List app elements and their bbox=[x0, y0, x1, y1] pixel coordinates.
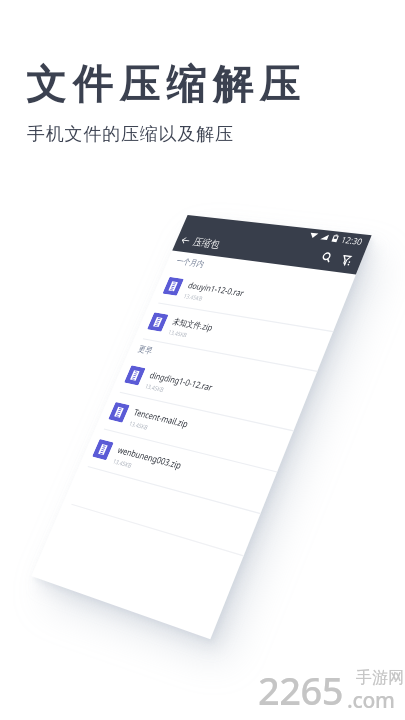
staticText: 一个月内 bbox=[175, 255, 206, 269]
button[interactable]: Search bbox=[313, 246, 341, 269]
staticText: 文件压缩解压 bbox=[26, 59, 307, 109]
staticText: .com bbox=[347, 686, 395, 715]
staticText: 压缩包 bbox=[191, 235, 222, 251]
staticText: 13.45KB bbox=[112, 457, 134, 469]
button[interactable]: douyin1-12-0.rar bbox=[150, 267, 349, 332]
staticText: 未知文件.zip bbox=[171, 315, 215, 333]
button[interactable]: dingding1-0-12.rar bbox=[111, 355, 309, 431]
button[interactable]: Filter bbox=[333, 248, 361, 272]
staticText: douyin1-12-0.rar bbox=[186, 279, 247, 298]
staticText: 手游网 bbox=[356, 668, 404, 688]
button[interactable]: Tencent-mail.zip bbox=[95, 391, 293, 473]
staticText: wenbuneng003.zip bbox=[116, 443, 184, 471]
staticText: 12:30 bbox=[339, 233, 365, 247]
staticText: Tencent-mail.zip bbox=[132, 406, 191, 430]
staticText: 13.45KB bbox=[144, 382, 166, 393]
staticText: 13.45KB bbox=[128, 419, 150, 431]
staticText: 更早 bbox=[137, 343, 154, 356]
staticText: 13.45KB bbox=[167, 328, 189, 338]
button[interactable]: wenbuneng003.zip bbox=[79, 428, 277, 514]
staticText: 手机文件的压缩以及解压 bbox=[27, 123, 234, 146]
staticText: dingding1-0-12.rar bbox=[148, 369, 215, 393]
staticText: 2265 bbox=[258, 664, 343, 716]
button[interactable]: 未知文件.zip bbox=[134, 302, 333, 372]
button[interactable]: Back bbox=[173, 229, 198, 251]
staticText: 13.45KB bbox=[183, 292, 205, 302]
